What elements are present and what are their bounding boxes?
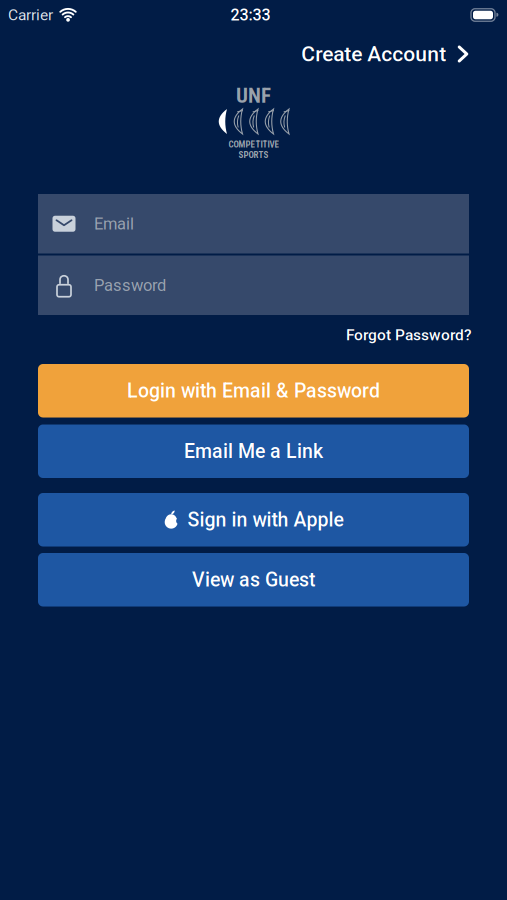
staticText: Email Me a Link: [184, 440, 323, 463]
staticText: UNF: [236, 83, 271, 108]
staticText: Login with Email & Password: [127, 379, 380, 402]
staticText: COMPETITIVE: [228, 139, 278, 150]
staticText: Carrier: [8, 6, 53, 24]
staticText: View as Guest: [192, 568, 315, 591]
staticText: Sign in with Apple: [187, 508, 343, 531]
staticText: SPORTS: [238, 150, 268, 160]
staticText: Password: [94, 276, 166, 295]
staticText: 23:33: [230, 6, 270, 24]
staticText: Email: [94, 214, 134, 233]
staticText: Forgot Password?: [346, 326, 472, 344]
staticText: Create Account: [301, 42, 446, 66]
